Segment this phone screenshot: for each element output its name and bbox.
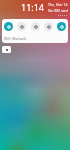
- button[interactable]: Wi-Fi: [4, 22, 13, 31]
- staticText: Thu, Mar 14: [48, 2, 68, 7]
- staticText: No SIM card: [48, 8, 69, 13]
- button[interactable]: Do not disturb: [31, 22, 40, 31]
- staticText: • • • • •: [58, 14, 67, 18]
- button[interactable]: Auto rotate: [57, 22, 66, 31]
- button[interactable]: Bluetooth: [17, 22, 26, 31]
- button[interactable]: Notification: [2, 46, 11, 53]
- button[interactable]: Flashlight: [44, 22, 53, 31]
- staticText: 11:14: [21, 1, 45, 13]
- staticText: Wi-Fi Bluetooth: [4, 37, 27, 41]
